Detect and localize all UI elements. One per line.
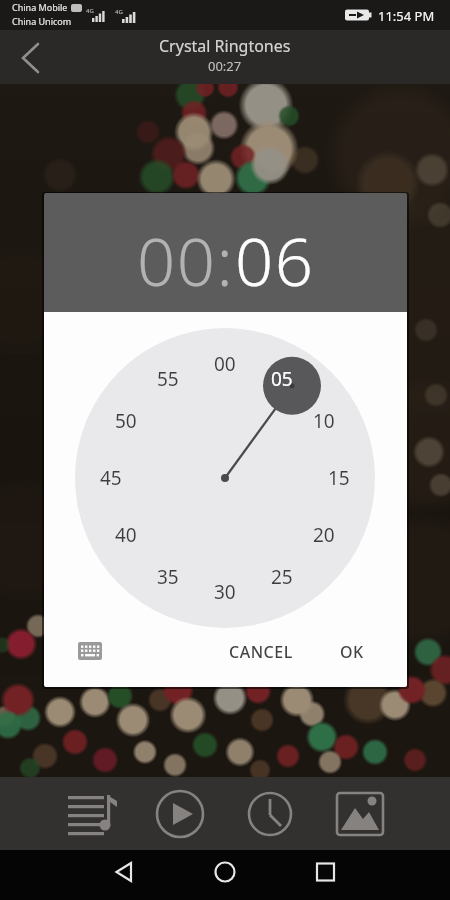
button[interactable]: OK [324,634,379,670]
button[interactable] [135,777,225,850]
staticText: 15 [328,465,350,491]
staticText: China Unicom [12,15,72,27]
staticText: 4G [115,8,123,16]
staticText: 50 [115,408,137,434]
staticText: 35 [157,564,179,590]
staticText: 25 [271,564,293,590]
staticText: 06 [235,214,315,305]
staticText: China Mobile [12,1,68,13]
staticText: 00:27 [208,57,242,75]
staticText: 11:54 PM [378,7,435,25]
button[interactable] [300,850,450,900]
staticText: OK [340,641,364,663]
staticText: Crystal Ringtones [159,35,291,57]
staticText: 55 [157,366,179,392]
button[interactable] [315,777,405,850]
button[interactable] [66,636,114,666]
button[interactable] [45,777,135,850]
staticText: 4G [86,7,94,15]
staticText: 10 [313,408,335,434]
staticText: 30 [214,579,236,605]
button[interactable] [0,850,150,900]
staticText: 00 [214,351,236,377]
staticText: 05 [271,366,293,392]
button[interactable] [225,777,315,850]
staticText: 45 [100,465,122,491]
button[interactable] [150,850,300,900]
button[interactable]: CANCEL [216,634,306,670]
staticText: 00: [137,214,235,305]
button[interactable] [0,30,54,84]
staticText: 40 [115,522,137,548]
staticText: 20 [313,522,335,548]
staticText: CANCEL [229,641,293,663]
